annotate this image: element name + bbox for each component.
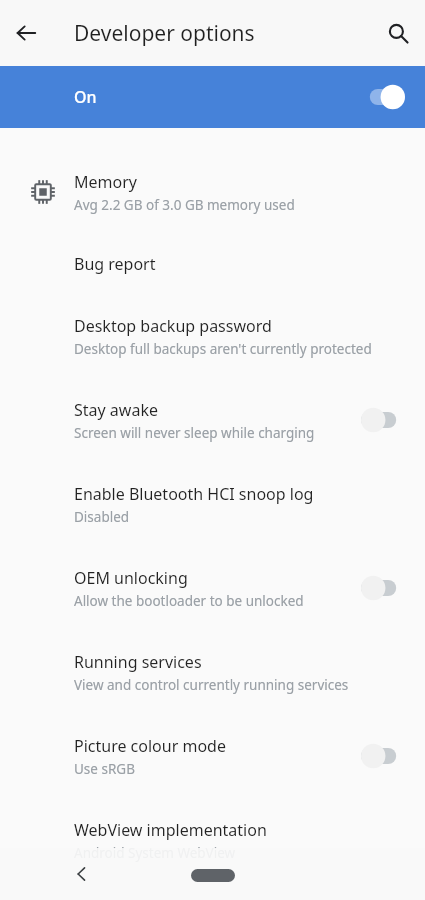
button[interactable]: Bug report bbox=[0, 234, 425, 294]
staticText: On bbox=[74, 86, 97, 108]
staticText: Avg 2.2 GB of 3.0 GB memory used bbox=[74, 196, 295, 214]
staticText: WebView implementation bbox=[74, 819, 267, 841]
button[interactable]: Enable Bluetooth HCI snoop log bbox=[0, 462, 425, 546]
staticText: Picture colour mode bbox=[74, 735, 226, 757]
button[interactable]: Stay awake bbox=[0, 378, 425, 462]
staticText: Android System WebView bbox=[74, 844, 236, 862]
button[interactable]: Back bbox=[5, 12, 47, 54]
staticText: Disabled bbox=[74, 508, 130, 526]
button[interactable]: Back bbox=[64, 856, 100, 892]
button[interactable]: WebView implementation bbox=[0, 798, 425, 882]
button[interactable]: Desktop backup password bbox=[0, 294, 425, 378]
button[interactable]: Memory bbox=[0, 150, 425, 234]
button[interactable]: Running services bbox=[0, 630, 425, 714]
button[interactable]: Picture colour mode bbox=[0, 714, 425, 798]
button[interactable]: OEM unlocking bbox=[0, 546, 425, 630]
button[interactable]: Search bbox=[377, 12, 419, 54]
staticText: Enable Bluetooth HCI snoop log bbox=[74, 483, 314, 505]
staticText: Memory bbox=[74, 171, 137, 193]
staticText: Running services bbox=[74, 651, 202, 673]
staticText: Screen will never sleep while charging bbox=[74, 424, 315, 442]
staticText: Use sRGB bbox=[74, 760, 135, 778]
staticText: Desktop full backups aren't currently pr… bbox=[74, 340, 372, 358]
button[interactable]: On bbox=[0, 66, 425, 128]
button[interactable]: Home bbox=[191, 869, 235, 882]
staticText: Developer options bbox=[74, 19, 255, 48]
staticText: OEM unlocking bbox=[74, 567, 188, 589]
staticText: Stay awake bbox=[74, 399, 158, 421]
staticText: View and control currently running servi… bbox=[74, 676, 349, 694]
staticText: Bug report bbox=[74, 253, 156, 275]
staticText: Allow the bootloader to be unlocked bbox=[74, 592, 304, 610]
staticText: Desktop backup password bbox=[74, 315, 272, 337]
